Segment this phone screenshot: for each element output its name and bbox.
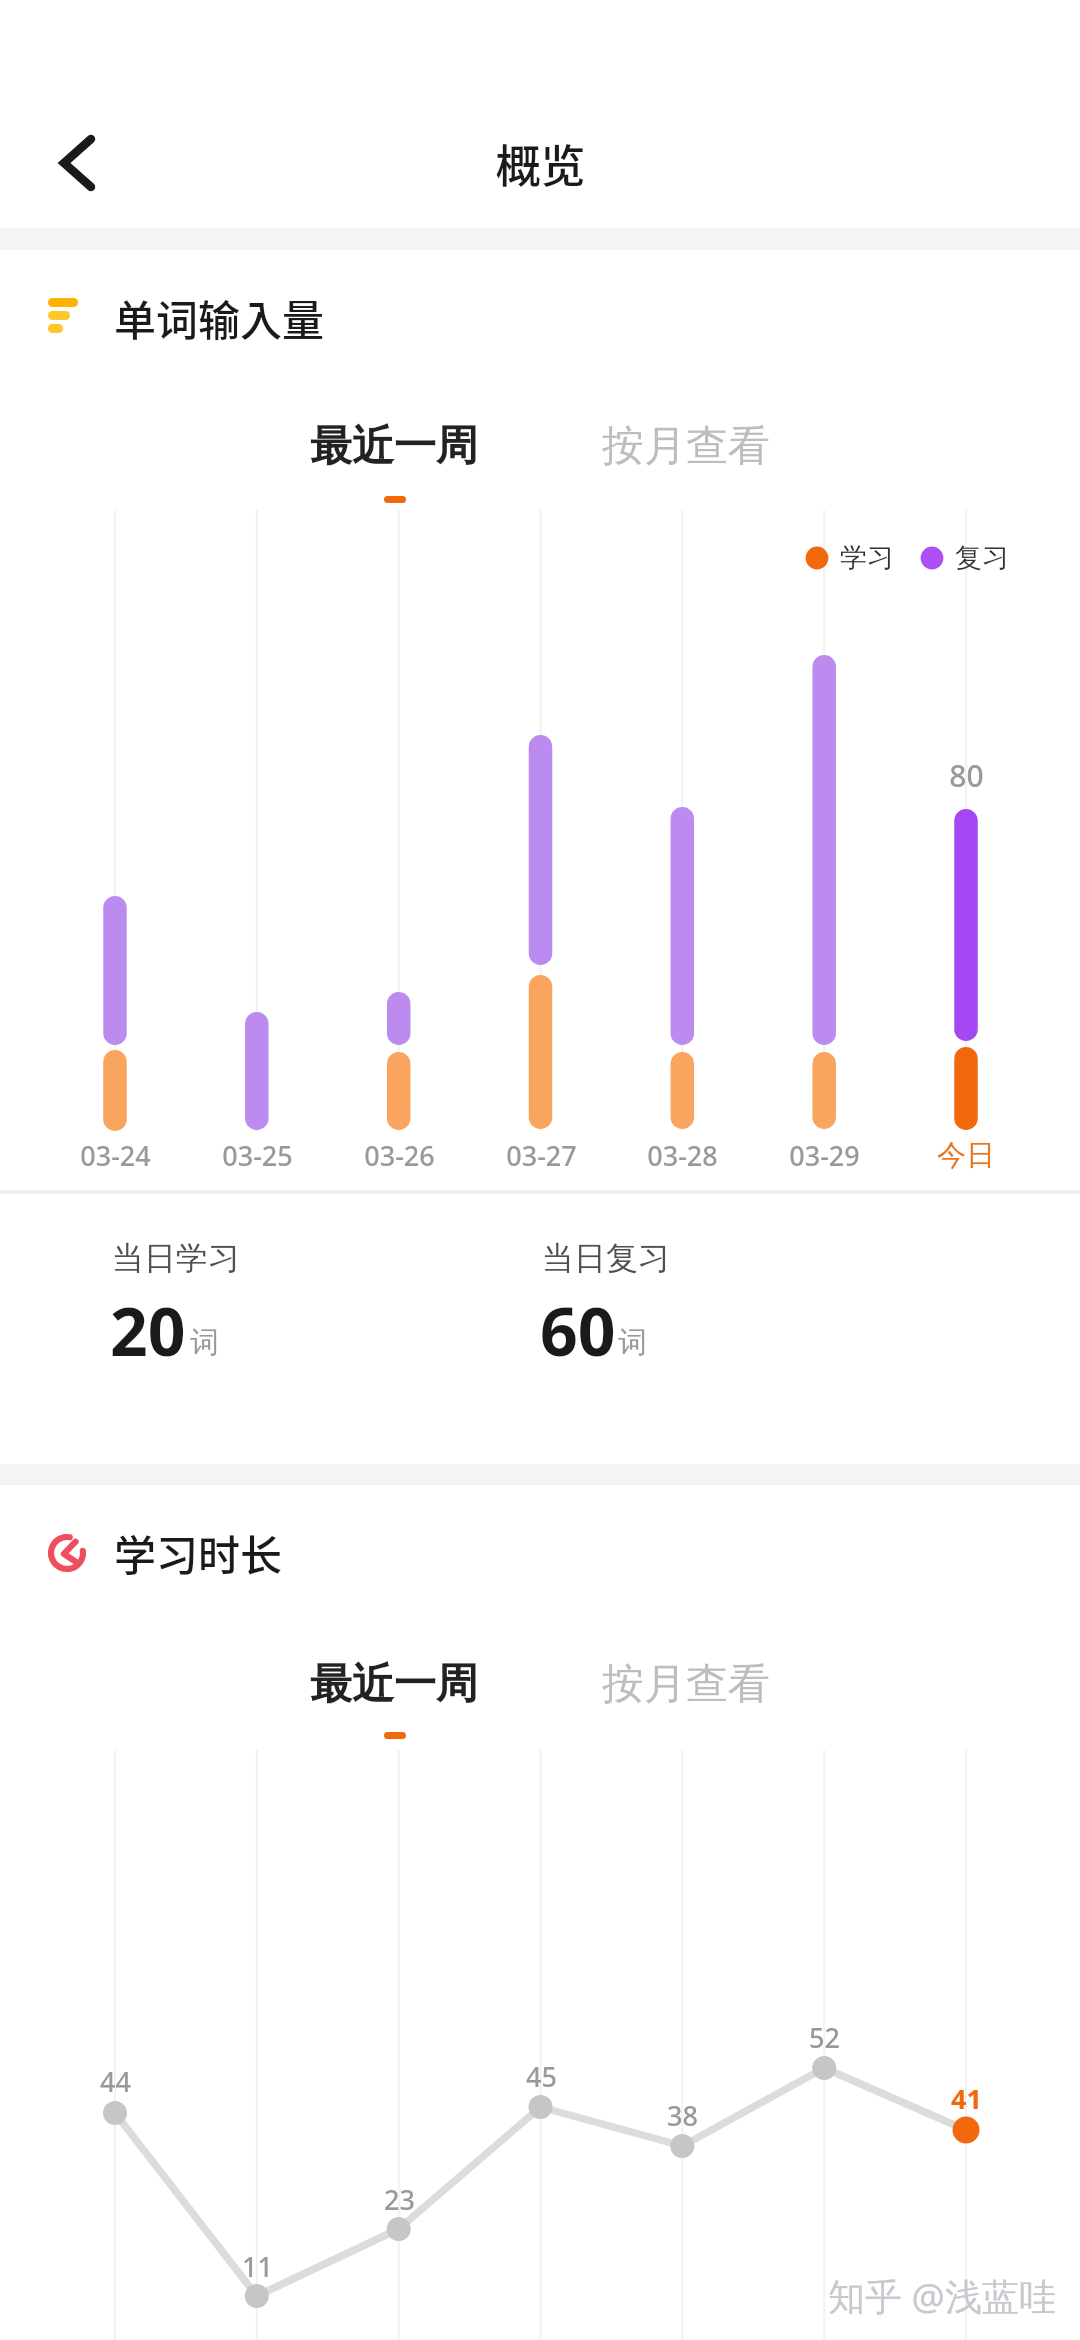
staticText: 复习 (955, 541, 1009, 575)
button[interactable] (280, 1648, 510, 1724)
staticText: 词 (618, 1324, 647, 1361)
button[interactable] (570, 1648, 800, 1724)
staticText: 03-25 (222, 1137, 293, 1174)
staticText: 当日复习 (542, 1238, 670, 1278)
staticText: 按月查看 (602, 420, 770, 473)
staticText: 03-28 (647, 1137, 718, 1174)
staticText: 60 (540, 1285, 616, 1375)
staticText: 最近一周 (310, 420, 478, 473)
staticText: 单词输入量 (114, 287, 325, 348)
staticText: 学习 (840, 541, 894, 575)
staticText: 概览 (495, 131, 586, 196)
staticText: 45 (526, 2058, 557, 2095)
staticText: 03-29 (789, 1137, 860, 1174)
staticText: 03-26 (364, 1137, 435, 1174)
staticText: 学习时长 (114, 1522, 283, 1583)
staticText: 41 (951, 2080, 982, 2117)
staticText: 11 (242, 2248, 273, 2285)
staticText: 38 (667, 2097, 698, 2134)
staticText: 23 (384, 2181, 415, 2218)
button[interactable] (280, 410, 510, 486)
staticText: 词 (190, 1324, 219, 1361)
staticText: 最近一周 (310, 1658, 478, 1711)
staticText: 按月查看 (602, 1658, 770, 1711)
staticText: 今日 (937, 1137, 995, 1174)
staticText: 80 (949, 755, 984, 796)
staticText: 知乎 @浅蓝哇 (828, 2270, 1056, 2321)
staticText: 52 (809, 2019, 840, 2056)
staticText: 44 (100, 2063, 131, 2100)
staticText: 03-27 (506, 1137, 577, 1174)
staticText: 03-24 (80, 1137, 151, 1174)
staticText: 20 (110, 1285, 186, 1375)
button[interactable] (570, 410, 800, 486)
button[interactable] (50, 130, 110, 190)
staticText: 当日学习 (112, 1238, 240, 1278)
